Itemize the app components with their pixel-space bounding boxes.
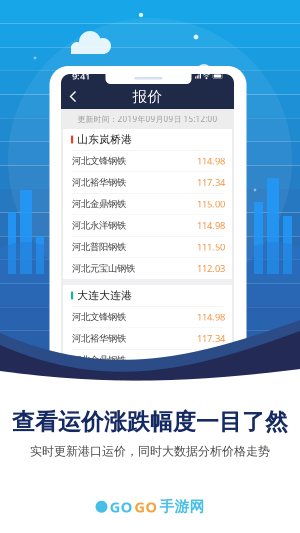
staticText: 河北元宝山钢铁 (72, 263, 135, 274)
button[interactable]: 河北裕华钢铁 (63, 172, 232, 193)
staticText: 115.00 (197, 354, 225, 366)
staticText: 河北文锋钢铁 (72, 311, 126, 323)
button[interactable]: 河北普阳钢铁 (63, 236, 232, 257)
staticText: 河北文锋钢铁 (72, 155, 126, 167)
staticText: 河北裕华钢铁 (72, 177, 126, 188)
staticText: 河北永洋钢铁 (72, 376, 126, 387)
button[interactable]: 河北裕华钢铁 (63, 328, 232, 349)
staticText: 河北金鼎钢铁 (72, 198, 126, 210)
button[interactable]: 河北元宝山钢铁 (63, 258, 232, 279)
staticText: GO (134, 497, 157, 516)
button[interactable]: 河北永洋钢铁 (63, 215, 232, 236)
staticText: 9:41 (72, 70, 90, 82)
staticText: 河北普阳钢铁 (72, 241, 126, 253)
staticText: 查看运价涨跌幅度一目了然 (12, 408, 288, 436)
staticText: 114.98 (197, 155, 225, 167)
staticText: 115.00 (197, 198, 225, 210)
staticText: 114.98 (197, 375, 225, 388)
staticText: 117.34 (197, 176, 225, 189)
staticText: 河北金鼎钢铁 (72, 354, 126, 366)
button[interactable]: 河北文锋钢铁 (63, 150, 232, 171)
staticText: 114.98 (197, 219, 225, 232)
staticText: 山东岚桥港 (77, 133, 132, 146)
button[interactable]: 河北金鼎钢铁 (63, 349, 232, 370)
staticText: 大连大连港 (77, 289, 132, 302)
staticText: GO (109, 497, 132, 516)
staticText: 河北永洋钢铁 (72, 220, 126, 231)
staticText: 手游网 (159, 498, 204, 516)
staticText: 报价 (132, 87, 162, 105)
staticText: 112.03 (197, 262, 225, 275)
button[interactable]: 河北文锋钢铁 (63, 306, 232, 327)
staticText: 实时更新港口运价，同时大数据分析价格走势 (30, 444, 270, 458)
staticText: 114.98 (197, 311, 225, 323)
button[interactable]: 河北永洋钢铁 (63, 371, 232, 392)
staticText: 111.50 (197, 241, 225, 253)
button[interactable]: 河北金鼎钢铁 (63, 193, 232, 214)
staticText: 更新时间：2019年09月09日 15:12:00 (77, 114, 217, 124)
staticText: 河北裕华钢铁 (72, 333, 126, 344)
staticText: 117.34 (197, 332, 225, 345)
button[interactable]: Back (66, 87, 80, 105)
